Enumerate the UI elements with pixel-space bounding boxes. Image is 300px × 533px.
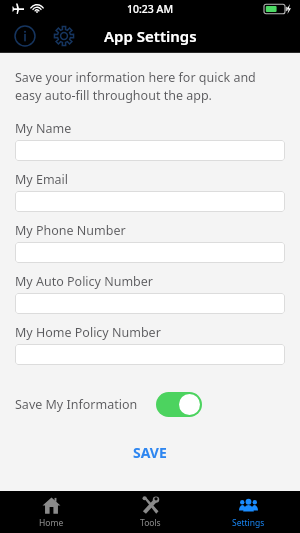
staticText: Home — [39, 517, 64, 529]
button[interactable] — [15, 293, 285, 314]
staticText: 10:23 AM — [127, 2, 174, 16]
staticText: My Auto Policy Number — [15, 273, 154, 290]
button[interactable]: SAVE — [15, 439, 285, 465]
staticText: Settings — [232, 517, 265, 529]
button[interactable]: Tools — [103, 491, 198, 533]
staticText: My Name — [15, 120, 72, 137]
button[interactable] — [15, 344, 285, 365]
button[interactable] — [15, 140, 285, 161]
button[interactable]: Settings — [201, 491, 296, 533]
staticText: App Settings — [104, 26, 197, 46]
staticText: Save your information here for quick and… — [15, 69, 269, 104]
button[interactable] — [15, 191, 285, 212]
button[interactable]: Home — [4, 491, 99, 533]
button[interactable]: Info — [10, 21, 40, 51]
staticText: Tools — [140, 517, 161, 529]
button[interactable]: Save My Information toggle — [156, 392, 202, 417]
staticText: My Home Policy Number — [15, 324, 161, 341]
button[interactable] — [15, 242, 285, 263]
staticText: My Phone Number — [15, 222, 126, 239]
staticText: Save My Information — [15, 396, 138, 413]
staticText: My Email — [15, 171, 69, 188]
staticText: SAVE — [133, 443, 167, 462]
button[interactable]: Settings gear — [48, 20, 80, 52]
